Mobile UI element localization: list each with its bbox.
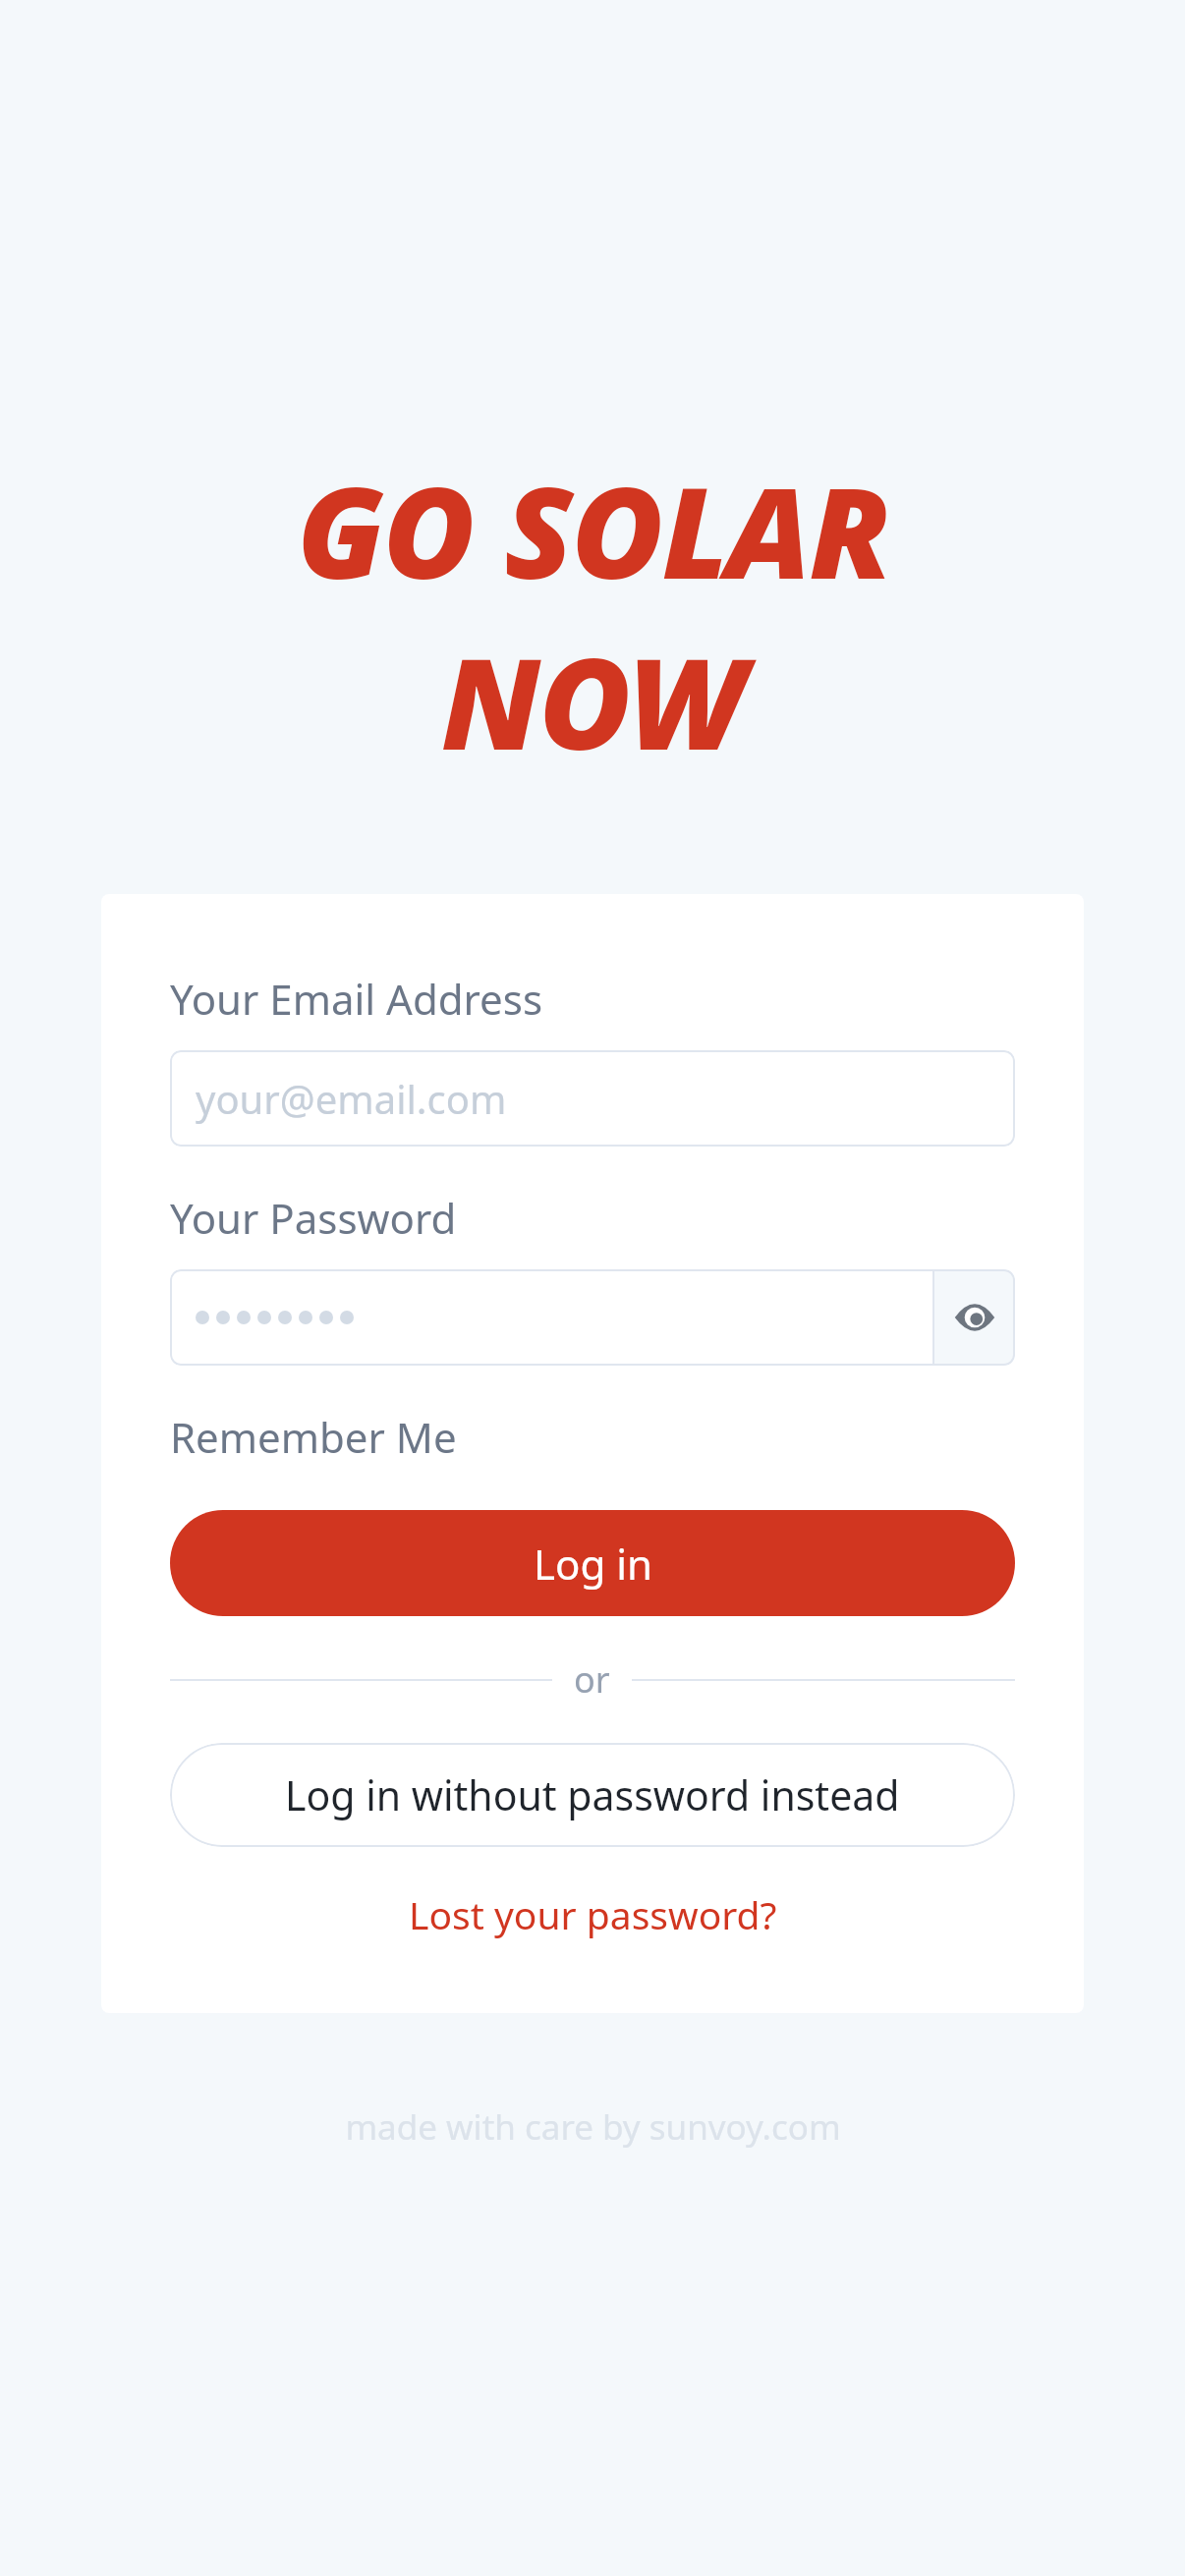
staticText: made with care by sunvoy.com (345, 2103, 841, 2151)
button[interactable]: your@email.com (170, 1050, 1015, 1147)
staticText: Your Email Address (170, 971, 543, 1027)
staticText: Log in without password instead (285, 1767, 900, 1822)
staticText: your@email.com (196, 1072, 507, 1125)
button[interactable]: Lost your password? (170, 1888, 1015, 1940)
staticText: GO SOLAR (297, 444, 889, 615)
button[interactable] (170, 1269, 932, 1366)
staticText: NOW (441, 615, 744, 786)
staticText: Remember Me (170, 1409, 457, 1465)
staticText: or (574, 1655, 610, 1704)
staticText: Log in (534, 1536, 652, 1592)
button[interactable]: Log in (170, 1510, 1015, 1616)
staticText: Your Password (170, 1190, 457, 1246)
button[interactable]: Log in without password instead (170, 1743, 1015, 1847)
button[interactable]: Show password (934, 1269, 1015, 1366)
staticText: Lost your password? (409, 1888, 777, 1940)
